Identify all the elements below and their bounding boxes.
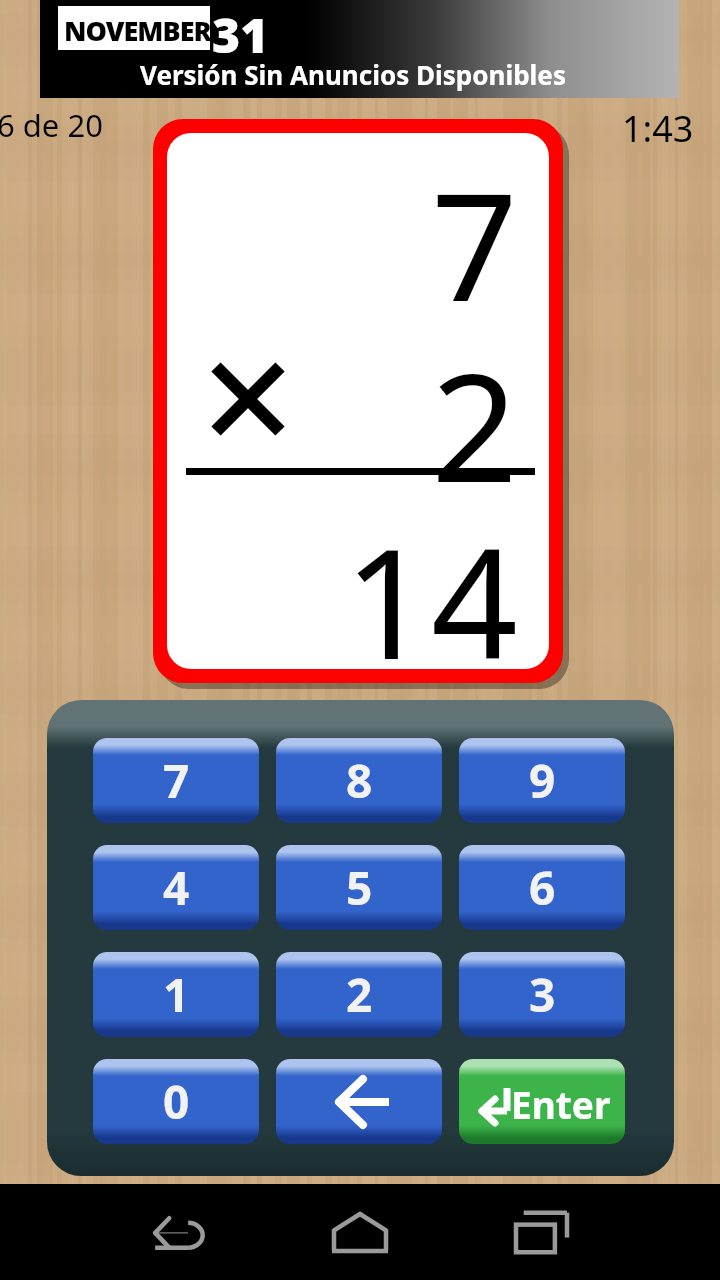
staticText: 31: [212, 2, 269, 67]
button[interactable]: Back: [90, 1184, 270, 1280]
staticText: Enter: [511, 1079, 611, 1129]
staticText: 1: [163, 963, 190, 1026]
button[interactable]: 7: [93, 738, 259, 823]
button[interactable]: 6: [459, 845, 625, 930]
button[interactable]: 8: [276, 738, 442, 823]
staticText: 9: [529, 749, 556, 812]
button[interactable]: Backspace: [276, 1059, 442, 1144]
staticText: 6 de 20: [0, 104, 103, 146]
staticText: 1:43: [622, 104, 694, 153]
button[interactable]: 1: [93, 952, 259, 1037]
button[interactable]: 4: [93, 845, 259, 930]
button[interactable]: 3: [459, 952, 625, 1037]
staticText: 2: [346, 963, 373, 1026]
staticText: 0: [163, 1070, 190, 1133]
button[interactable]: Recent apps: [452, 1184, 632, 1280]
staticText: 8: [346, 749, 373, 812]
staticText: 6: [529, 856, 556, 919]
button[interactable]: 7: [153, 119, 563, 683]
staticText: Versión Sin Anuncios Disponibles: [140, 57, 566, 92]
staticText: 2: [418, 322, 518, 482]
staticText: 3: [529, 963, 556, 1026]
staticText: 4: [163, 856, 190, 919]
button[interactable]: 5: [276, 845, 442, 930]
button[interactable]: 0: [93, 1059, 259, 1144]
button[interactable]: Home: [270, 1184, 450, 1280]
button[interactable]: 9: [459, 738, 625, 823]
button[interactable]: NOVEMBER: [40, 0, 679, 98]
staticText: 7: [418, 141, 518, 301]
staticText: NOVEMBER: [64, 12, 211, 49]
staticText: 5: [346, 856, 373, 919]
staticText: 7: [163, 749, 190, 812]
staticText: 14: [328, 497, 518, 667]
button[interactable]: 2: [276, 952, 442, 1037]
button[interactable]: Enter: [459, 1059, 625, 1144]
